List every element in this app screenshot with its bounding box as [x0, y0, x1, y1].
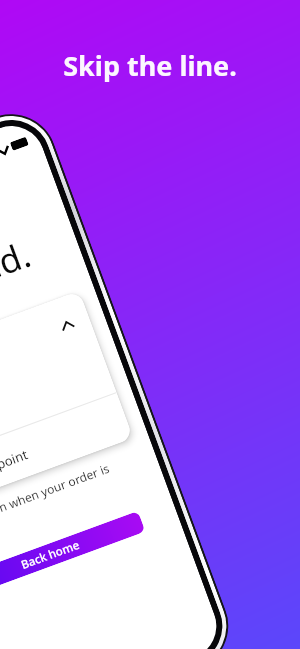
staticText: Back home — [19, 537, 82, 573]
staticText: Collection point — [0, 445, 30, 495]
button[interactable]: Collapse order details — [0, 291, 133, 513]
button[interactable]: Back home — [0, 511, 145, 599]
staticText: Order placed. — [0, 230, 37, 344]
staticText: Skip the line. — [0, 47, 300, 84]
staticText: You'll get a notification when your orde… — [0, 456, 121, 544]
other: Collapse order details — [61, 320, 74, 331]
